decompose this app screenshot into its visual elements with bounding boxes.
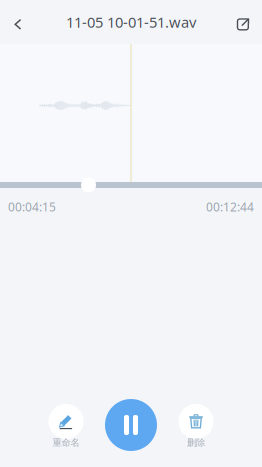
staticText: 00:04:15 (8, 199, 56, 215)
staticText: 重命名 (52, 437, 79, 448)
staticText: 11-05 10-01-51.wav (66, 12, 196, 32)
button[interactable]: Back (3, 2, 33, 46)
staticText: 00:12:44 (206, 199, 254, 215)
staticText: 删除 (187, 437, 205, 448)
button[interactable]: 重命名 (48, 404, 84, 448)
button[interactable]: 删除 (178, 404, 214, 448)
button[interactable]: Pause (105, 399, 157, 451)
button[interactable]: Share (228, 2, 258, 46)
